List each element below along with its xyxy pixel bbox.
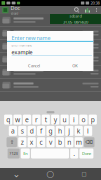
button[interactable]: m — [75, 137, 83, 147]
button[interactable]: d — [28, 126, 36, 136]
button[interactable]: s — [18, 126, 26, 136]
button[interactable] — [0, 66, 101, 79]
staticText: p — [91, 115, 95, 124]
staticText: Enter new name — [11, 44, 32, 47]
staticText: e — [25, 115, 29, 124]
staticText: t — [45, 115, 47, 124]
button[interactable]: w — [13, 115, 22, 125]
staticText: f — [40, 126, 42, 135]
staticText: sdcard — [69, 13, 81, 19]
staticText: r — [35, 115, 38, 124]
button[interactable]: . — [70, 148, 78, 158]
staticText: ⌫ — [85, 139, 93, 145]
button[interactable]: Done — [79, 148, 93, 158]
button[interactable] — [0, 14, 101, 27]
staticText: z — [21, 138, 24, 147]
button[interactable]: a — [9, 126, 17, 136]
button[interactable]: g — [46, 126, 55, 136]
staticText: Doc — [11, 4, 21, 12]
staticText: a — [11, 126, 15, 135]
button[interactable]: ?123 — [8, 148, 20, 158]
staticText: i — [73, 115, 75, 124]
staticText: sdcard — [11, 12, 19, 15]
button[interactable]: b — [56, 137, 64, 147]
staticText: g — [48, 126, 52, 135]
staticText: x — [30, 138, 34, 147]
button[interactable]: Recents — [67, 168, 101, 180]
staticText: ⇧ — [10, 139, 14, 145]
button[interactable]: i — [70, 115, 78, 125]
button[interactable]: x — [28, 137, 36, 147]
button[interactable]: OK — [67, 62, 83, 70]
staticText: q — [6, 115, 10, 124]
button[interactable]: ⇧ — [6, 137, 17, 147]
button[interactable]: l — [84, 126, 92, 136]
button[interactable]: Cancel — [23, 62, 45, 70]
staticText: w — [15, 115, 20, 124]
staticText: example — [11, 49, 32, 56]
staticText: b — [58, 138, 62, 147]
button[interactable] — [0, 79, 101, 92]
staticText: OK — [72, 63, 77, 68]
button[interactable]: v — [46, 137, 55, 147]
staticText: u — [63, 115, 67, 124]
button[interactable]: q — [4, 115, 12, 125]
staticText: h — [58, 126, 62, 135]
button[interactable]: Back — [0, 168, 33, 180]
staticText: 20:38 — [90, 0, 99, 6]
button[interactable] — [0, 27, 101, 40]
staticText: □ — [81, 171, 86, 177]
staticText: n — [67, 138, 71, 147]
button[interactable]: u — [60, 115, 69, 125]
staticText: l — [87, 126, 89, 135]
button[interactable]: f — [37, 126, 45, 136]
staticText: . — [73, 149, 75, 158]
staticText: ◯ — [46, 170, 53, 178]
staticText: Enter new name — [11, 34, 50, 41]
button[interactable]: ⌫ — [84, 137, 94, 147]
button[interactable]: o — [79, 115, 87, 125]
button[interactable]: Home — [33, 168, 67, 180]
staticText: 31.05 08/14/20 — [63, 19, 88, 25]
staticText: ?123 — [10, 151, 18, 156]
staticText: Cancel — [28, 63, 40, 68]
button[interactable] — [0, 53, 101, 66]
button[interactable]: Search — [74, 7, 79, 13]
button[interactable]: h — [56, 126, 64, 136]
button[interactable]: More options — [91, 7, 99, 13]
staticText: v — [49, 138, 52, 147]
staticText: j — [68, 126, 70, 135]
button[interactable]: En — [21, 148, 30, 158]
button[interactable]: j — [65, 126, 73, 136]
staticText: k — [77, 126, 81, 135]
button[interactable]: p — [89, 115, 97, 125]
button[interactable]: k — [75, 126, 83, 136]
staticText: s — [21, 126, 24, 135]
staticText: y — [54, 115, 57, 124]
button[interactable]: r — [32, 115, 40, 125]
button[interactable]: z — [18, 137, 26, 147]
button[interactable] — [31, 148, 69, 158]
button[interactable]: t — [42, 115, 50, 125]
button[interactable]: y — [51, 115, 59, 125]
button[interactable]: n — [65, 137, 73, 147]
button[interactable]: e — [23, 115, 31, 125]
staticText: ⌄ — [12, 169, 20, 179]
staticText: d — [30, 126, 34, 135]
staticText: m — [76, 138, 82, 147]
button[interactable] — [0, 40, 101, 53]
button[interactable]: c — [37, 137, 45, 147]
staticText: c — [40, 138, 43, 147]
button[interactable]: Chart — [79, 7, 91, 13]
staticText: o — [81, 115, 85, 124]
staticText: En — [23, 151, 27, 156]
staticText: Done — [82, 151, 91, 156]
